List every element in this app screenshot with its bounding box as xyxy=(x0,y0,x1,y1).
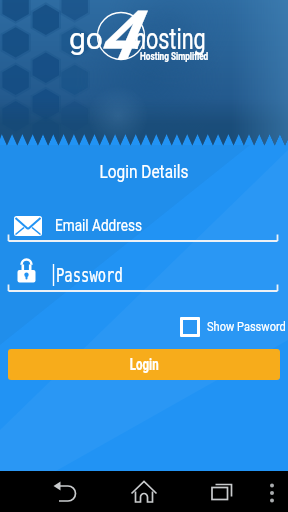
staticText: Email Address xyxy=(55,215,142,235)
staticText: Hosting Simplified xyxy=(140,51,209,63)
staticText: Login xyxy=(130,355,159,374)
staticText: Show Password xyxy=(207,319,286,334)
button[interactable] xyxy=(202,471,242,512)
button[interactable]: Show Password xyxy=(176,313,284,341)
button[interactable]: Password xyxy=(6,256,282,294)
button[interactable] xyxy=(124,471,164,512)
button[interactable]: Login xyxy=(8,349,280,380)
staticText: go xyxy=(69,21,103,56)
staticText: 4 xyxy=(100,0,138,76)
button[interactable] xyxy=(258,471,286,512)
staticText: Login Details xyxy=(17,162,271,183)
button[interactable] xyxy=(44,471,84,512)
button[interactable]: Email Address xyxy=(6,206,282,244)
staticText: Password xyxy=(56,264,123,286)
staticText: hosting xyxy=(134,21,206,56)
